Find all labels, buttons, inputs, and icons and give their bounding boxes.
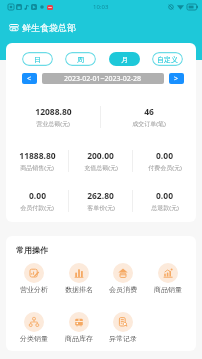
staticText: > [174,74,179,84]
staticText: < [27,74,32,84]
staticText: 总退款(元) [151,204,179,212]
staticText: 262.80 [87,190,114,202]
button[interactable]: 营业分析 [12,263,56,294]
button[interactable]: 日 [22,52,53,66]
button[interactable]: 月 [109,52,140,66]
button[interactable]: 2023-02-01~2023-02-28 [42,73,164,84]
staticText: 自定义 [157,55,178,64]
staticText: 异常记录 [109,334,137,343]
staticText: 周 [77,55,84,64]
staticText: 商品销量 [154,285,182,294]
staticText: 月 [121,55,128,64]
staticText: 会员消费 [109,285,137,294]
staticText: 客单价(元) [87,204,115,212]
button[interactable]: Previous period [22,73,37,84]
staticText: 11888.80 [19,150,56,162]
staticText: 0.00 [29,190,46,202]
staticText: 10:03 [93,3,109,11]
button[interactable]: 自定义 [152,52,183,66]
staticText: 成交订单(笔) [132,120,166,128]
button[interactable]: 商品销量 [146,263,190,294]
staticText: 鲜生食袋总部 [22,22,76,33]
staticText: 常用操作 [16,245,48,255]
staticText: 0.00 [156,150,173,162]
staticText: 200.00 [87,150,114,162]
staticText: 商品销售(元) [20,164,54,172]
staticText: 46 [144,106,154,118]
button[interactable]: 分类销量 [12,312,56,343]
staticText: 营业总额(元) [36,120,70,128]
staticText: 会员付款(元) [20,204,54,212]
button[interactable]: Next period [169,73,184,84]
staticText: 12088.80 [35,106,72,118]
staticText: 日 [34,55,41,64]
other: Store [9,24,19,31]
button[interactable]: 异常记录 [101,312,145,343]
button[interactable]: 会员消费 [101,263,145,294]
staticText: 商品库存 [65,334,93,343]
staticText: 营业分析 [20,285,48,294]
button[interactable]: 商品库存 [57,312,101,343]
button[interactable]: 周 [65,52,96,66]
staticText: 付费会员(元) [148,164,182,172]
staticText: 0.00 [156,190,173,202]
staticText: 2023-02-01~2023-02-28 [64,74,142,84]
staticText: 充值总额(元) [84,164,118,172]
staticText: 分类销量 [20,334,48,343]
staticText: 数据排名 [65,285,93,294]
button[interactable]: 数据排名 [57,263,101,294]
